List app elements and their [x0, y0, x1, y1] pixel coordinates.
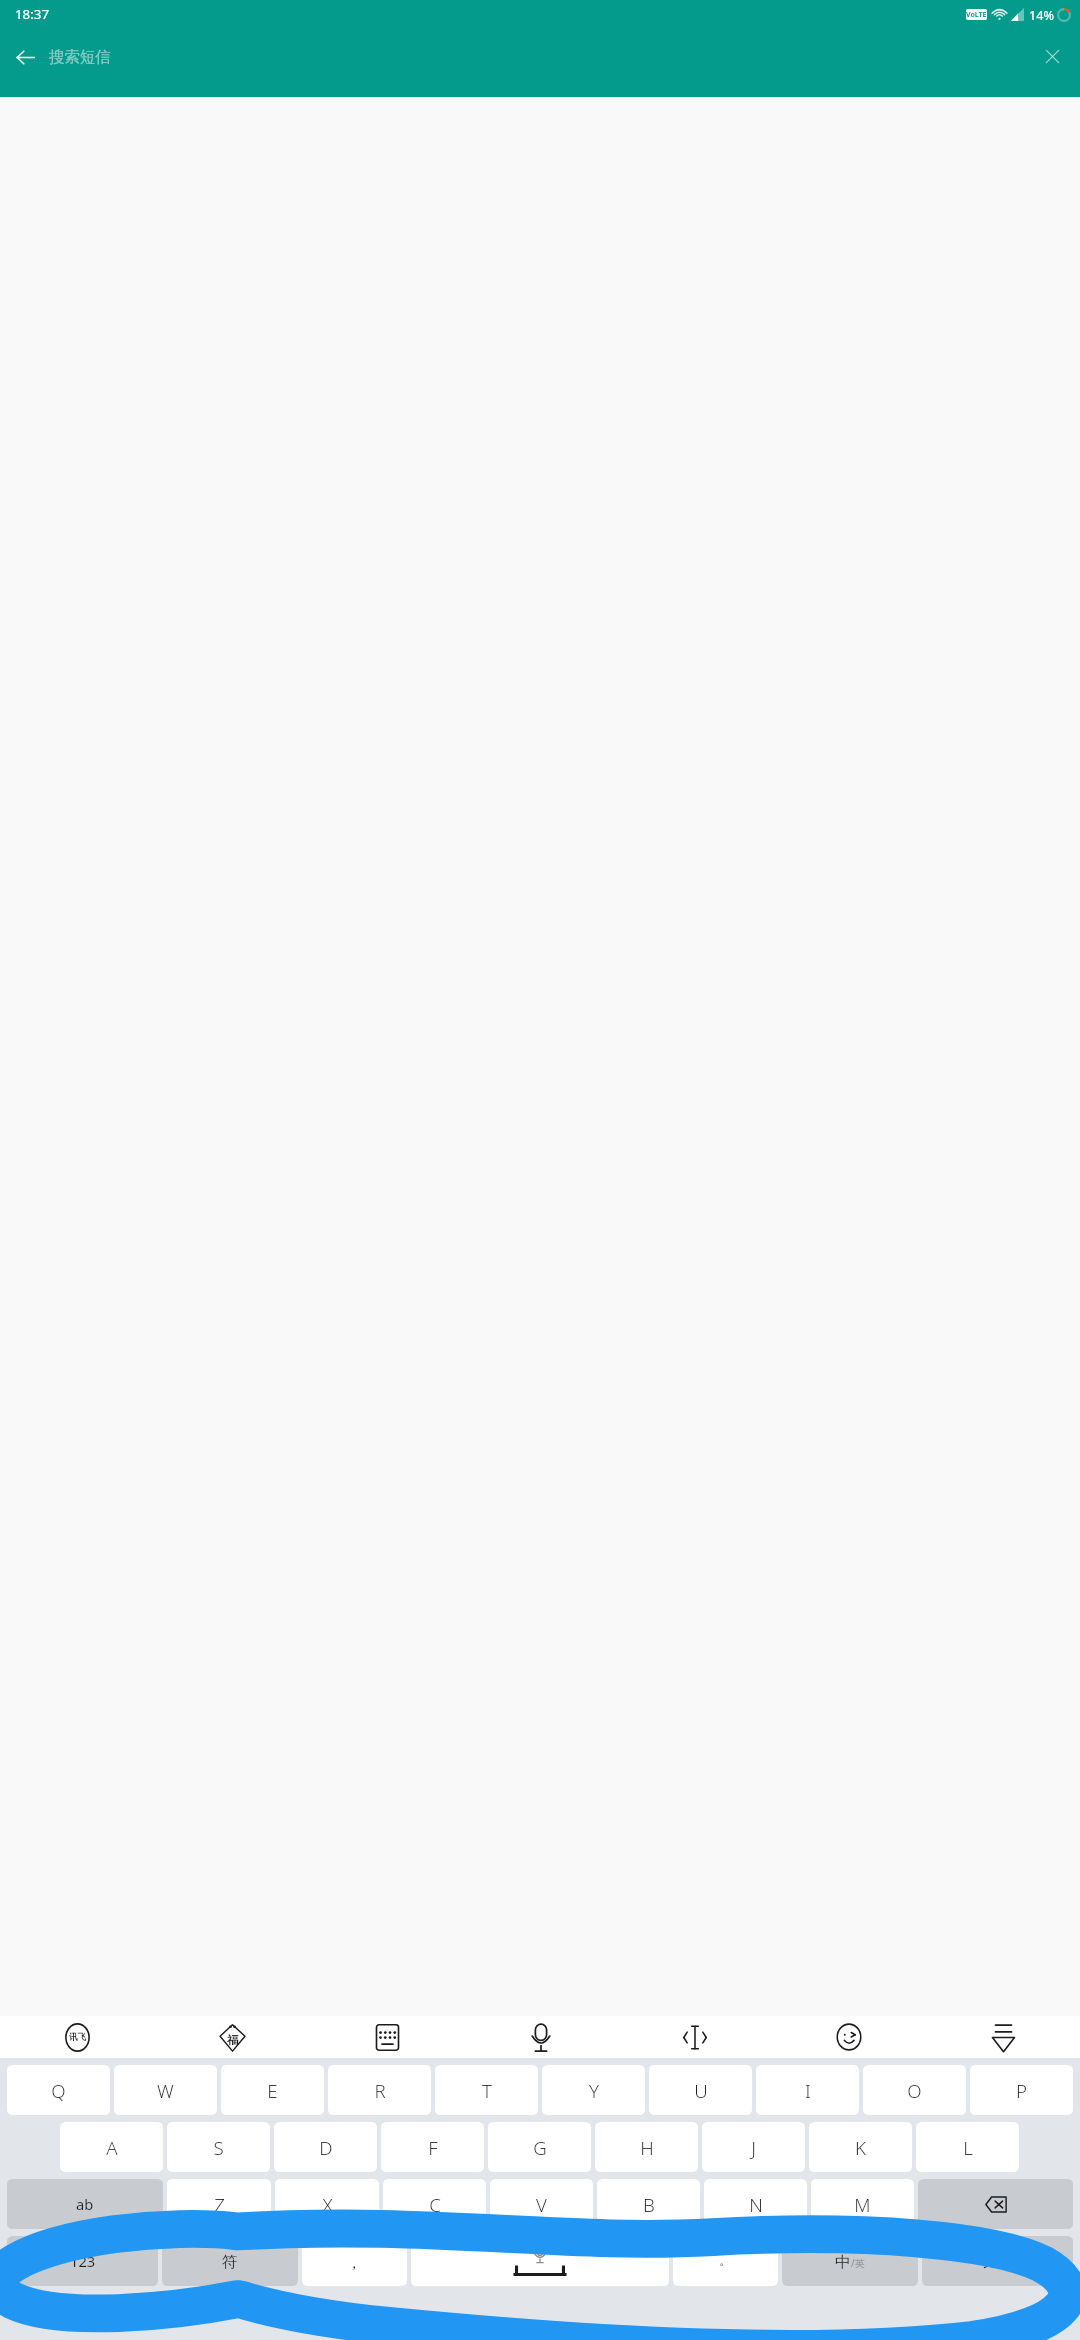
button[interactable]: D: [274, 2122, 377, 2172]
staticText: P: [1016, 2078, 1027, 2103]
staticText: 。: [719, 2253, 732, 2269]
staticText: 符: [222, 2252, 238, 2271]
button[interactable]: Z: [167, 2179, 271, 2229]
button[interactable]: A: [60, 2122, 163, 2172]
button[interactable]: O: [863, 2065, 966, 2115]
button[interactable]: X: [275, 2179, 379, 2229]
button[interactable]: ab: [7, 2179, 163, 2229]
staticText: /英: [851, 2256, 865, 2270]
staticText: 讯飞: [69, 2032, 87, 2043]
button[interactable]: Keyboard layout: [310, 2016, 464, 2058]
button[interactable]: Chinese English toggle: [782, 2236, 918, 2286]
button[interactable]: W: [114, 2065, 217, 2115]
button[interactable]: F: [381, 2122, 484, 2172]
staticText: A: [106, 2135, 118, 2160]
button[interactable]: Theme: [155, 2016, 310, 2058]
button[interactable]: iFlytek input: [0, 2016, 155, 2058]
staticText: N: [749, 2192, 763, 2217]
button[interactable]: Hide keyboard: [7, 2297, 44, 2334]
button[interactable]: Numbers: [7, 2236, 158, 2286]
staticText: B: [643, 2192, 655, 2217]
staticText: R: [374, 2078, 386, 2103]
button[interactable]: Y: [542, 2065, 645, 2115]
staticText: 福: [227, 2033, 239, 2047]
button[interactable]: Cursor move: [618, 2016, 772, 2058]
button[interactable]: Voice input: [464, 2016, 618, 2058]
staticText: X: [322, 2192, 333, 2217]
button[interactable]: Collapse: [926, 2016, 1080, 2058]
button[interactable]: Emoji: [772, 2016, 926, 2058]
button[interactable]: P: [970, 2065, 1073, 2115]
button[interactable]: U: [649, 2065, 752, 2115]
staticText: G: [533, 2135, 547, 2160]
button[interactable]: Backspace: [918, 2179, 1073, 2229]
staticText: O: [907, 2078, 922, 2103]
button[interactable]: N: [704, 2179, 807, 2229]
button[interactable]: G: [488, 2122, 591, 2172]
button[interactable]: S: [167, 2122, 270, 2172]
button[interactable]: E: [221, 2065, 324, 2115]
button[interactable]: Comma: [302, 2236, 407, 2286]
button[interactable]: Symbols: [162, 2236, 298, 2286]
staticText: Y: [589, 2078, 599, 2103]
staticText: J: [751, 2135, 756, 2160]
button[interactable]: T: [435, 2065, 538, 2115]
staticText: 完成: [983, 2252, 1013, 2270]
staticText: VoLTE: [966, 10, 987, 20]
staticText: I: [805, 2078, 811, 2103]
staticText: Q: [51, 2078, 66, 2103]
button[interactable]: Q: [7, 2065, 110, 2115]
button[interactable]: Clear search: [1037, 41, 1068, 72]
staticText: W: [157, 2078, 174, 2103]
staticText: C: [429, 2192, 441, 2217]
button[interactable]: L: [916, 2122, 1019, 2172]
staticText: T: [482, 2078, 492, 2103]
button[interactable]: Period: [673, 2236, 778, 2286]
button[interactable]: R: [328, 2065, 431, 2115]
staticText: 搜索短信: [49, 47, 111, 66]
button[interactable]: Switch keyboard: [1039, 2300, 1071, 2332]
staticText: M: [854, 2192, 871, 2217]
button[interactable]: J: [702, 2122, 805, 2172]
staticText: H: [640, 2135, 654, 2160]
button[interactable]: Space: [411, 2236, 669, 2286]
staticText: 中: [835, 2252, 851, 2271]
button[interactable]: M: [811, 2179, 914, 2229]
button[interactable]: B: [597, 2179, 700, 2229]
button[interactable]: Done: [922, 2236, 1073, 2286]
staticText: L: [963, 2135, 973, 2160]
button[interactable]: H: [595, 2122, 698, 2172]
staticText: ，: [347, 2254, 362, 2272]
button[interactable]: Back: [9, 41, 41, 73]
staticText: D: [319, 2135, 333, 2160]
staticText: 18:37: [15, 5, 50, 23]
staticText: V: [536, 2192, 547, 2217]
button[interactable]: I: [756, 2065, 859, 2115]
staticText: K: [855, 2135, 866, 2160]
button[interactable]: V: [490, 2179, 593, 2229]
staticText: S: [213, 2135, 224, 2160]
button[interactable]: K: [809, 2122, 912, 2172]
staticText: 123: [70, 2251, 96, 2271]
staticText: Z: [214, 2192, 225, 2217]
staticText: ab: [76, 2194, 94, 2214]
staticText: U: [694, 2078, 708, 2103]
staticText: 14%: [1029, 6, 1054, 23]
button[interactable]: C: [383, 2179, 486, 2229]
staticText: E: [267, 2078, 278, 2103]
staticText: F: [428, 2135, 438, 2160]
button[interactable]: 搜索短信: [49, 47, 1037, 66]
